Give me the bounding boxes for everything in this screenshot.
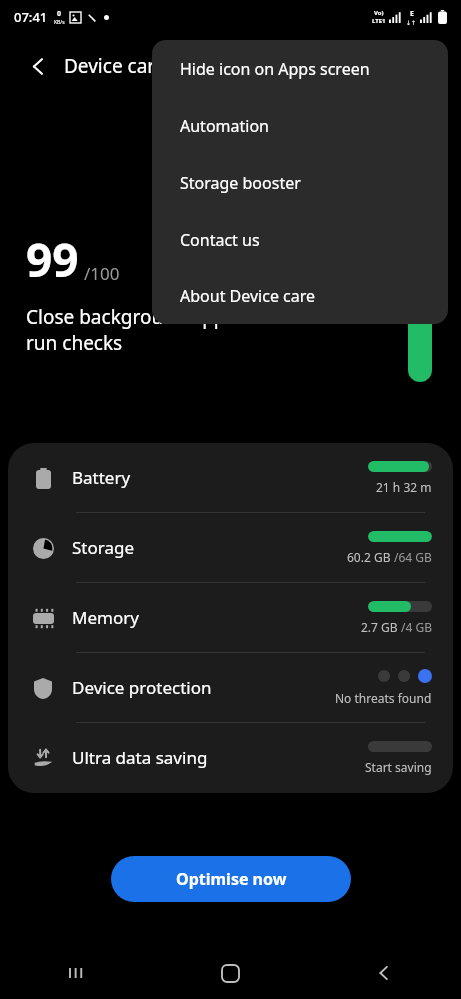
staticText: KB/s [54, 19, 65, 26]
staticText: E [410, 9, 414, 19]
staticText: Storage booster [180, 172, 301, 194]
button[interactable]: Back [18, 46, 58, 86]
staticText: Start saving [365, 759, 432, 775]
staticText: 0 [57, 9, 62, 19]
button[interactable]: Automation [152, 97, 448, 154]
staticText: Optimise now [176, 868, 287, 890]
staticText: 07:41 [14, 8, 48, 26]
button[interactable]: Ultra data saving [8, 723, 453, 792]
button[interactable]: Hide icon on Apps screen [152, 40, 448, 97]
staticText: Hide icon on Apps screen [180, 58, 370, 80]
button[interactable]: Back [307, 947, 461, 999]
staticText: 2.7 GB [361, 619, 401, 635]
staticText: Memory [72, 606, 139, 629]
button[interactable]: Contact us [152, 211, 448, 268]
button[interactable]: Storage [8, 513, 453, 582]
staticText: Device protection [72, 676, 212, 699]
staticText: 60.2 GB [347, 549, 394, 565]
staticText: 21 h 32 m [376, 479, 432, 495]
staticText: Close background apps and run checks [26, 304, 274, 356]
staticText: Automation [180, 115, 269, 137]
button[interactable]: Storage booster [152, 154, 448, 211]
button[interactable]: Battery [8, 443, 453, 512]
staticText: /64 GB [394, 549, 432, 565]
button[interactable]: Home [153, 947, 307, 999]
staticText: Storage [72, 536, 135, 559]
staticText: Vo) [374, 9, 384, 17]
button[interactable]: Device protection [8, 653, 453, 722]
button[interactable]: Recents [0, 947, 153, 999]
staticText: /4 GB [401, 619, 432, 635]
staticText: Device care [64, 53, 166, 79]
staticText: About Device care [180, 285, 316, 307]
button[interactable]: Optimise now [111, 856, 351, 902]
staticText: 99 [26, 228, 79, 291]
button[interactable]: About Device care [152, 268, 448, 324]
staticText: ↓↑ [406, 19, 417, 26]
staticText: LTE1 [372, 17, 386, 25]
staticText: Ultra data saving [72, 746, 208, 769]
staticText: Battery [72, 466, 131, 489]
button[interactable]: Memory [8, 583, 453, 652]
staticText: /100 [84, 262, 120, 285]
staticText: No threats found [335, 690, 432, 706]
staticText: Contact us [180, 229, 260, 251]
